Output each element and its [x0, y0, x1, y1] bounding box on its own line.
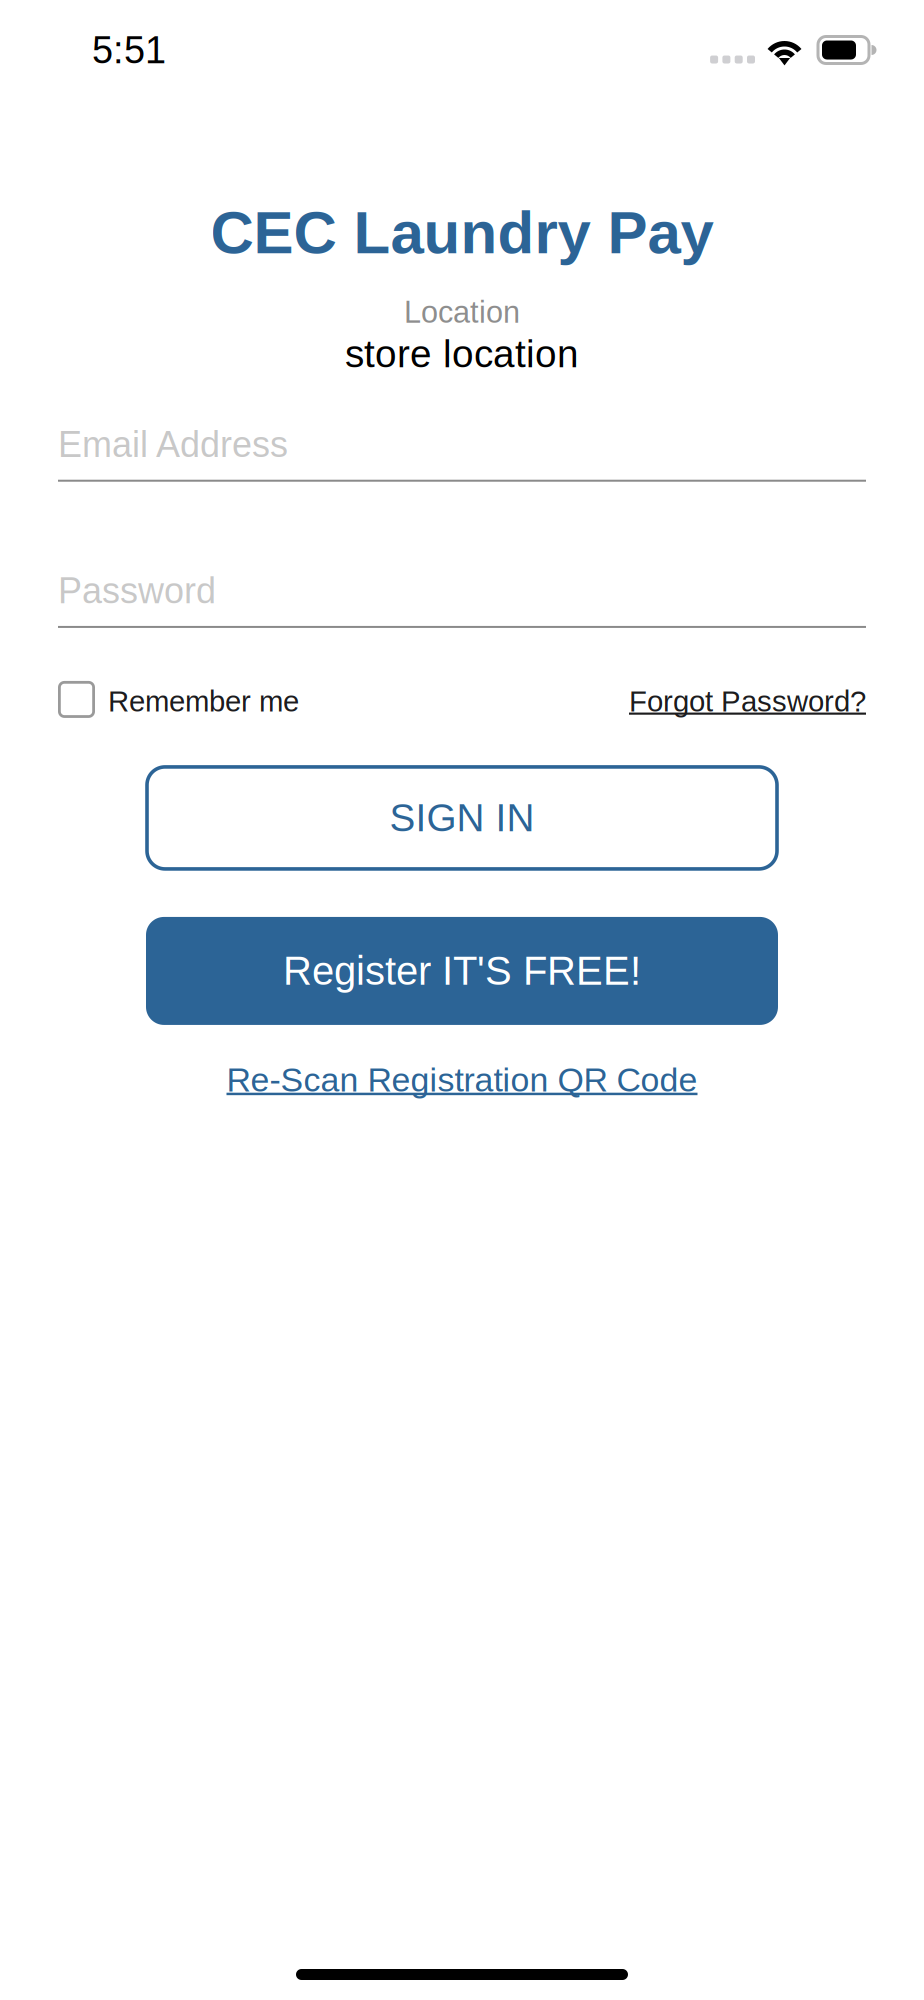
staticText: Password [58, 571, 216, 611]
staticText: SIGN IN [389, 796, 534, 839]
staticText: 5:51 [92, 29, 166, 71]
staticText: Re-Scan Registration QR Code [226, 1061, 697, 1099]
staticText: Register IT'S FREE! [283, 949, 641, 993]
staticText: Email Address [58, 424, 288, 465]
button[interactable]: Email Address [58, 424, 866, 482]
button[interactable]: Remember me [58, 683, 299, 720]
button[interactable]: SIGN IN [147, 767, 777, 869]
button[interactable]: Password [58, 571, 866, 628]
staticText: Location [404, 295, 520, 329]
button[interactable]: Forgot Password? [629, 685, 866, 718]
staticText: CEC Laundry Pay [210, 199, 713, 266]
staticText: Forgot Password? [629, 685, 866, 718]
staticText: Remember me [108, 685, 299, 718]
button[interactable]: Register IT'S FREE! [146, 917, 778, 1025]
staticText: store location [345, 332, 579, 375]
button[interactable]: Re-Scan Registration QR Code [226, 1061, 697, 1099]
